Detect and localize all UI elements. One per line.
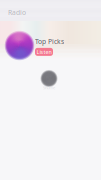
- button[interactable]: Listen: [35, 48, 53, 56]
- staticText: Listen: [36, 48, 51, 55]
- button[interactable]: Radio: [8, 8, 26, 17]
- button[interactable]: Play: [42, 72, 55, 85]
- staticText: Top Picks: [35, 37, 64, 46]
- staticText: Shuffle: [43, 85, 55, 90]
- staticText: Radio: [8, 8, 26, 17]
